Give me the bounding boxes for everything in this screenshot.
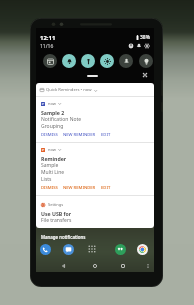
staticText: EDIT	[101, 185, 111, 191]
staticText: NEW REMINDER	[63, 185, 96, 191]
button[interactable]: NEW REMINDER	[63, 132, 101, 138]
button[interactable]: Manage notifications	[40, 233, 87, 241]
staticText: 11/16	[40, 43, 54, 50]
staticText: DISMISS	[41, 132, 58, 138]
button[interactable]: EDIT	[101, 132, 116, 138]
button[interactable]: Quick Reminders • now	[36, 83, 154, 96]
staticText: Notification Note	[41, 116, 82, 123]
button[interactable]: Cast	[119, 54, 133, 68]
button[interactable]: App 4	[137, 244, 148, 255]
button[interactable]: Power	[128, 43, 134, 49]
staticText: Quick Reminders • now	[46, 87, 92, 93]
button[interactable]: DISMISS	[41, 132, 63, 138]
button[interactable]: now	[36, 97, 154, 142]
staticText: Lists	[41, 176, 52, 183]
button[interactable]: Edit tiles	[142, 72, 148, 78]
staticText: 38%	[140, 34, 150, 41]
staticText: Reminder	[41, 155, 67, 162]
button[interactable]: All apps	[87, 244, 97, 254]
button[interactable]: Recents	[120, 263, 126, 269]
staticText: Multi Line	[41, 169, 65, 176]
button[interactable]: Night light	[139, 54, 153, 68]
button[interactable]: More options	[145, 263, 151, 269]
staticText: Settings	[48, 202, 64, 207]
button[interactable]: Home	[92, 263, 98, 269]
button[interactable]: Do not disturb	[62, 54, 76, 68]
staticText: Grouping	[41, 123, 64, 130]
button[interactable]: DISMISS	[41, 185, 63, 191]
button[interactable]: App 2	[63, 244, 74, 255]
button[interactable]: Screenshot	[43, 54, 57, 68]
button[interactable]: EDIT	[101, 185, 116, 191]
button[interactable]: Settings	[36, 196, 154, 228]
button[interactable]: Back	[60, 263, 66, 269]
staticText: DISMISS	[41, 185, 58, 191]
staticText: 12:11	[40, 34, 56, 42]
button[interactable]: NEW REMINDER	[63, 185, 101, 191]
button[interactable]: Settings	[144, 43, 150, 49]
button[interactable]: App 1	[40, 244, 51, 255]
staticText: File transfers	[41, 217, 72, 224]
staticText: Sample 2	[41, 109, 65, 116]
staticText: now	[48, 101, 56, 106]
button[interactable]: App 3	[115, 244, 126, 255]
staticText: now	[48, 147, 56, 152]
button[interactable]: Flashlight	[81, 54, 95, 68]
button[interactable]: now	[36, 143, 154, 195]
button[interactable]: Auto rotate	[100, 54, 114, 68]
staticText: Manage notifications	[41, 234, 86, 240]
staticText: NEW REMINDER	[63, 132, 96, 138]
staticText: Use USB for	[41, 210, 72, 217]
staticText: EDIT	[101, 132, 111, 138]
staticText: Sample	[41, 162, 59, 169]
button[interactable]: User	[136, 43, 142, 49]
